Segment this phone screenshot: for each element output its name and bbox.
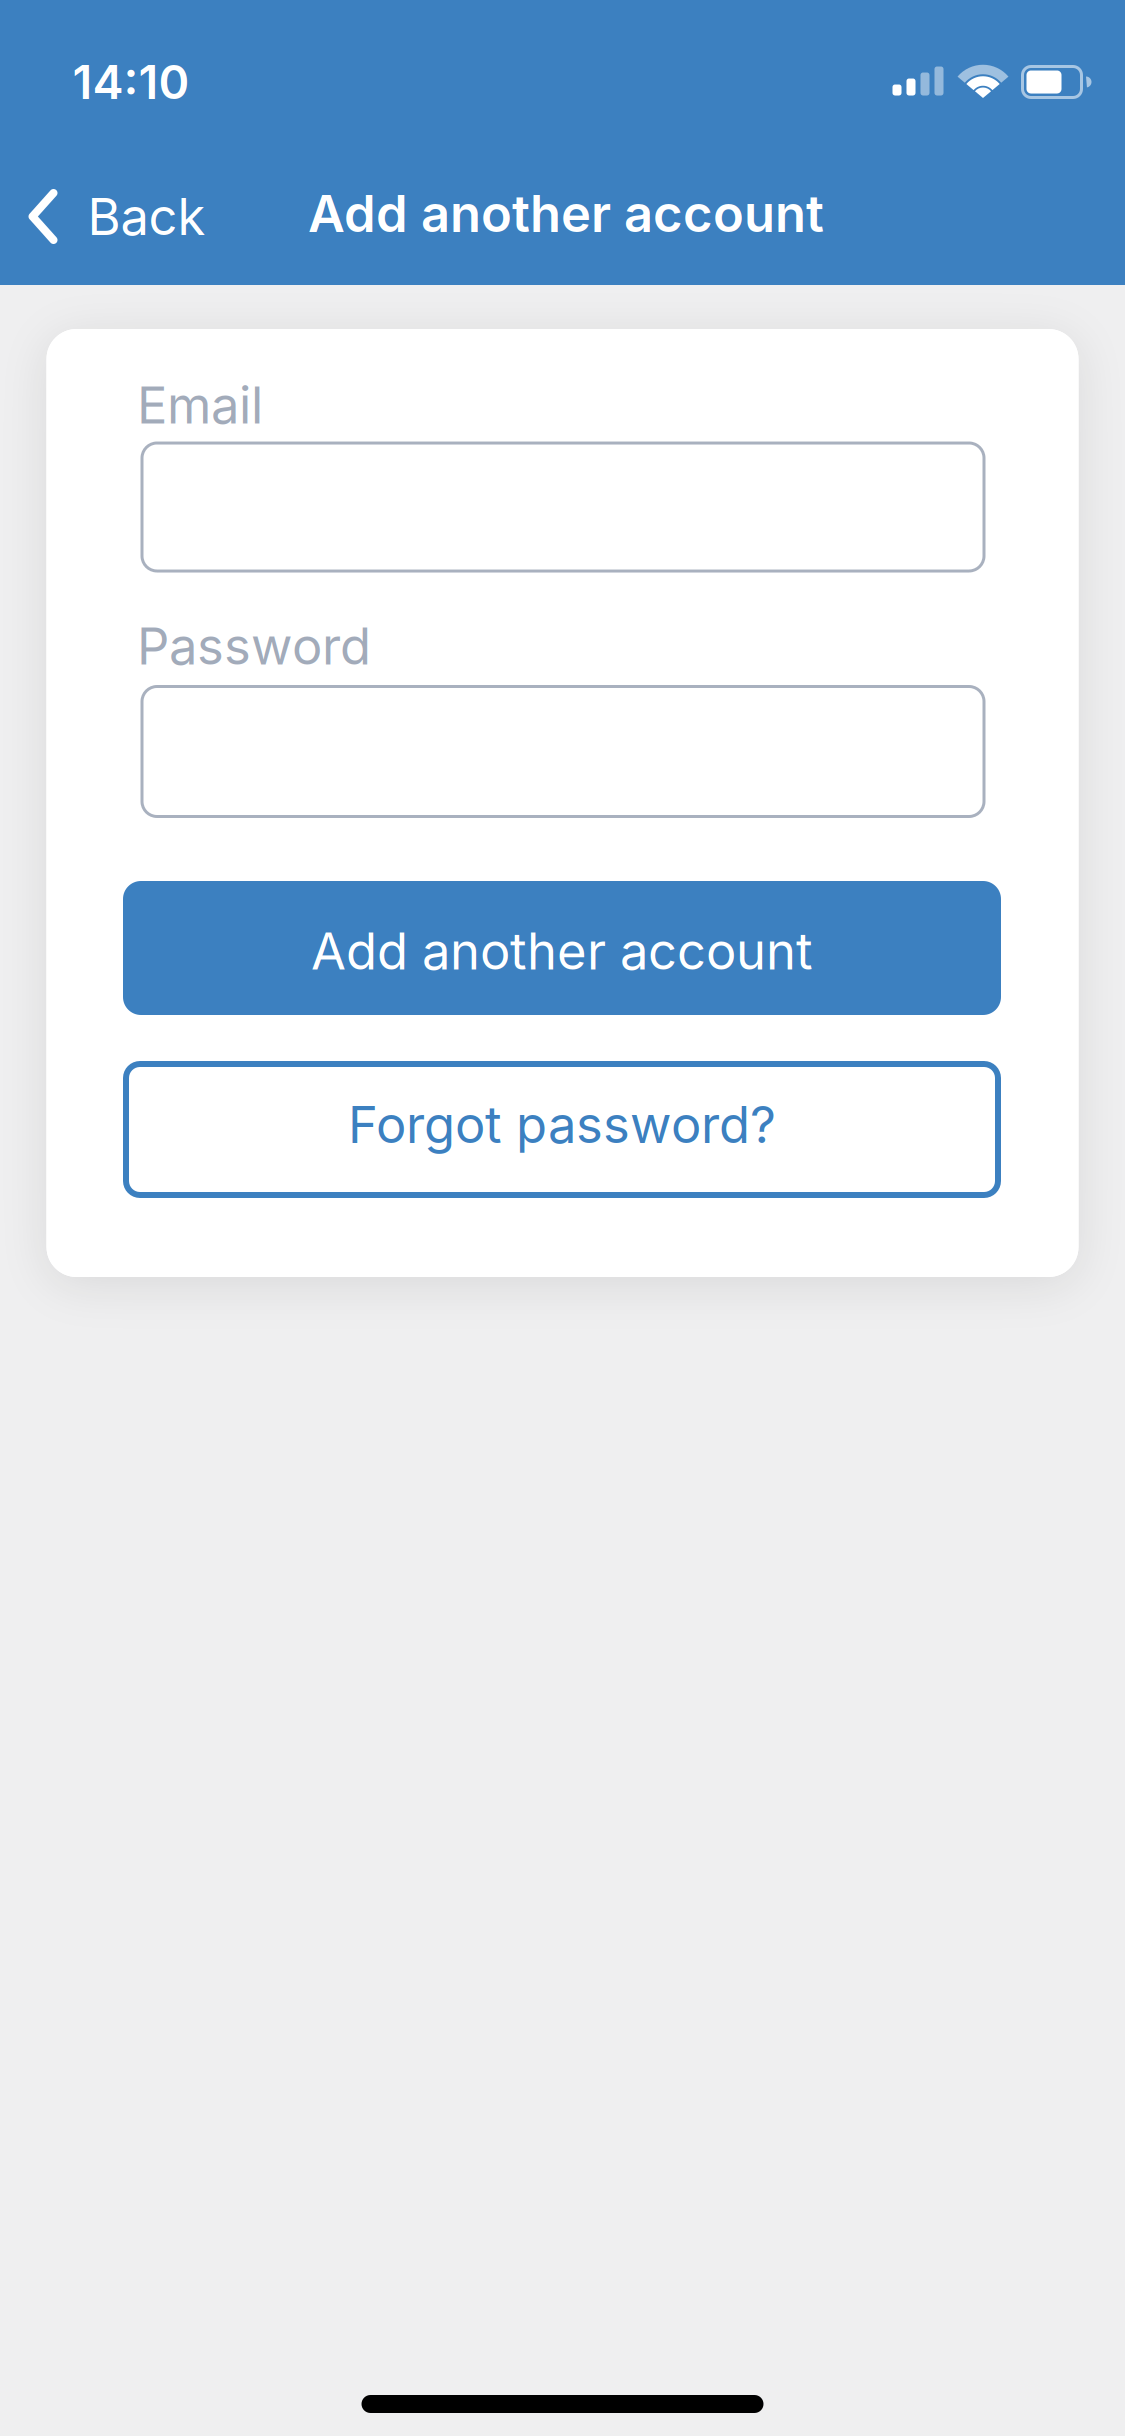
staticText: Add another account bbox=[308, 184, 824, 243]
staticText: Password bbox=[137, 616, 371, 676]
button[interactable]: Email bbox=[140, 441, 985, 572]
staticText: Add another account bbox=[311, 921, 813, 981]
staticText: Forgot password? bbox=[348, 1095, 776, 1154]
button[interactable]: Add another account bbox=[123, 881, 1001, 1015]
staticText: 14:10 bbox=[72, 54, 189, 110]
staticText: Email bbox=[137, 375, 263, 435]
button[interactable]: Password bbox=[140, 685, 985, 818]
button[interactable]: Back bbox=[28, 187, 205, 246]
staticText: Back bbox=[87, 187, 205, 246]
button[interactable]: Forgot password? bbox=[123, 1061, 1001, 1198]
